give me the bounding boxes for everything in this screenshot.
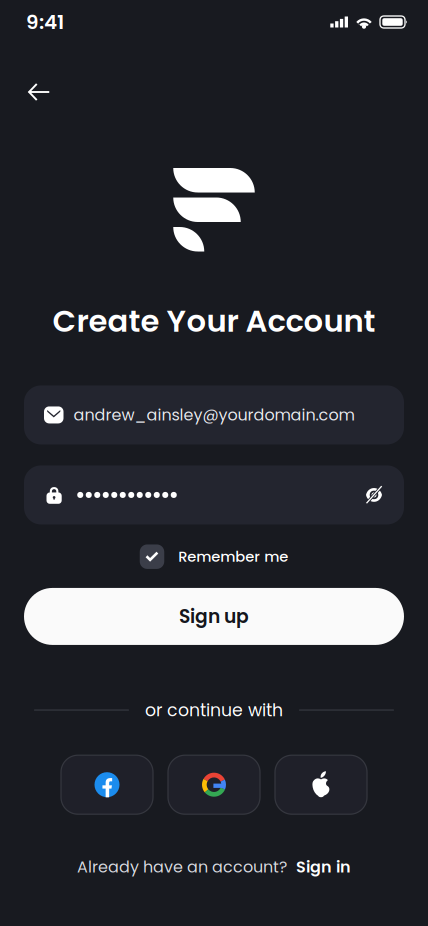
- staticText: Already have an account?: [77, 856, 287, 878]
- button[interactable]: Continue with Facebook: [61, 755, 153, 814]
- button[interactable]: Show password: [358, 479, 390, 511]
- button[interactable]: Sign in: [296, 856, 351, 878]
- staticText: Create Your Account: [52, 299, 375, 342]
- button[interactable]: Continue with Apple: [275, 755, 367, 814]
- button[interactable]: Remember me: [140, 544, 288, 569]
- staticText: Sign in: [296, 856, 351, 878]
- button[interactable]: Continue with Google: [168, 755, 260, 814]
- staticText: Sign up: [179, 603, 249, 629]
- staticText: or continue with: [145, 698, 283, 722]
- button[interactable]: Sign up: [24, 588, 404, 645]
- staticText: andrew_ainsley@yourdomain.com: [73, 404, 354, 426]
- staticText: Remember me: [178, 546, 288, 567]
- button[interactable]: Back: [16, 70, 60, 114]
- staticText: 9:41: [26, 8, 64, 36]
